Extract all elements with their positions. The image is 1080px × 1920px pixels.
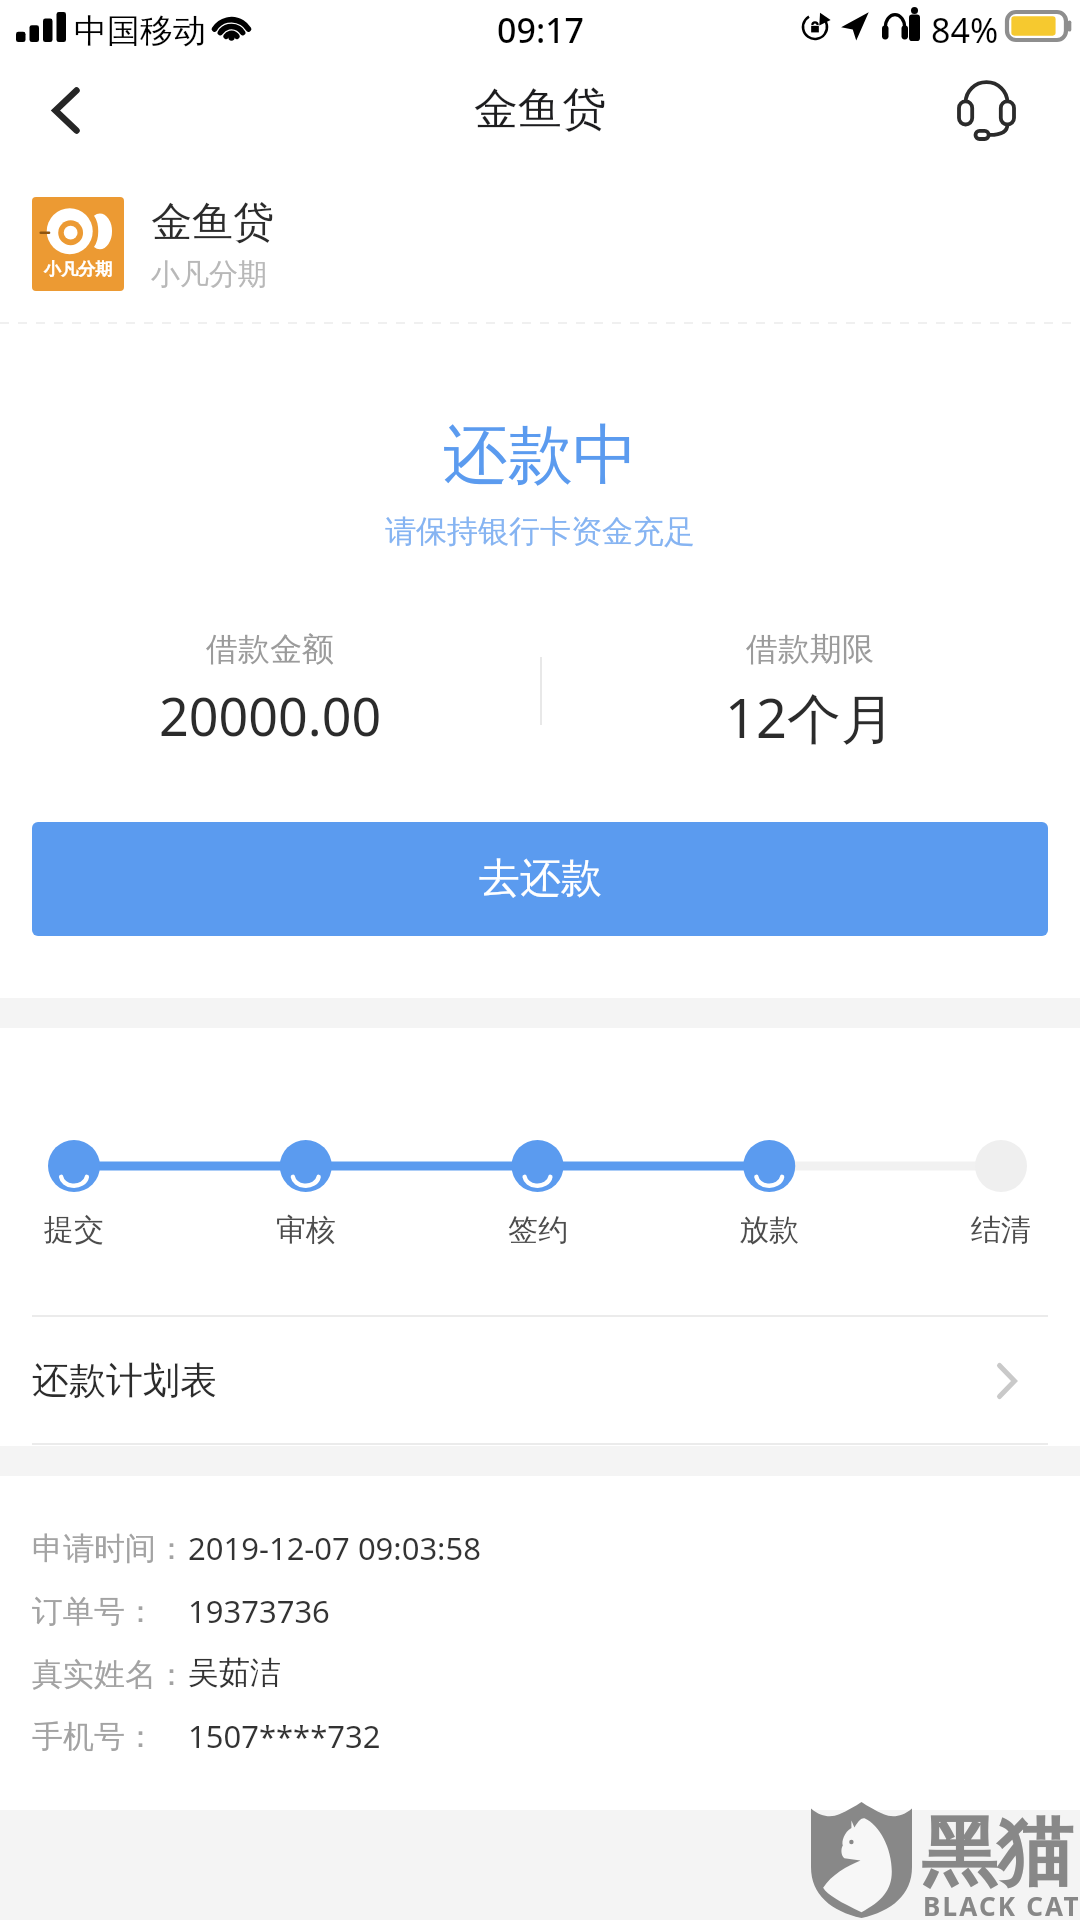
staticText: 审核 <box>276 1211 336 1249</box>
staticText: 申请时间： <box>32 1529 182 1568</box>
staticText: 吴茹洁 <box>188 1653 281 1692</box>
staticText: 黑猫 <box>921 1805 1073 1901</box>
staticText: 放款 <box>739 1211 799 1249</box>
staticText: 中国移动 <box>74 10 206 52</box>
staticText: 09:17 <box>497 7 585 53</box>
staticText: 借款金额 <box>206 629 334 669</box>
staticText: 请保持银行卡资金充足 <box>385 512 695 551</box>
staticText: BLACK CAT <box>923 1888 1080 1920</box>
staticText: 提交 <box>44 1211 104 1249</box>
staticText: 还款中 <box>443 414 638 496</box>
staticText: 小凡分期 <box>44 259 112 280</box>
staticText: 签约 <box>508 1211 568 1249</box>
staticText: 20000.00 <box>159 680 382 751</box>
staticText: 手机号： <box>32 1717 156 1756</box>
staticText: 还款计划表 <box>32 1357 217 1404</box>
button[interactable]: Back <box>0 58 131 172</box>
button[interactable]: 还款计划表 <box>0 1317 1080 1444</box>
staticText: 结清 <box>971 1211 1031 1249</box>
staticText: 19373736 <box>188 1590 330 1632</box>
button[interactable]: 去还款 <box>32 822 1048 936</box>
button[interactable]: Customer service <box>892 58 1080 172</box>
staticText: 借款期限 <box>746 629 874 669</box>
staticText: 去还款 <box>479 853 602 905</box>
staticText: 真实姓名： <box>32 1655 182 1694</box>
staticText: 金鱼贷 <box>474 82 606 137</box>
staticText: 金鱼贷 <box>151 197 274 249</box>
staticText: 2019-12-07 09:03:58 <box>188 1527 481 1569</box>
staticText: 12个月 <box>725 680 895 754</box>
staticText: 小凡分期 <box>151 256 267 293</box>
staticText: 84% <box>931 7 999 53</box>
staticText: 订单号： <box>32 1592 156 1631</box>
staticText: 1507****732 <box>188 1715 381 1757</box>
